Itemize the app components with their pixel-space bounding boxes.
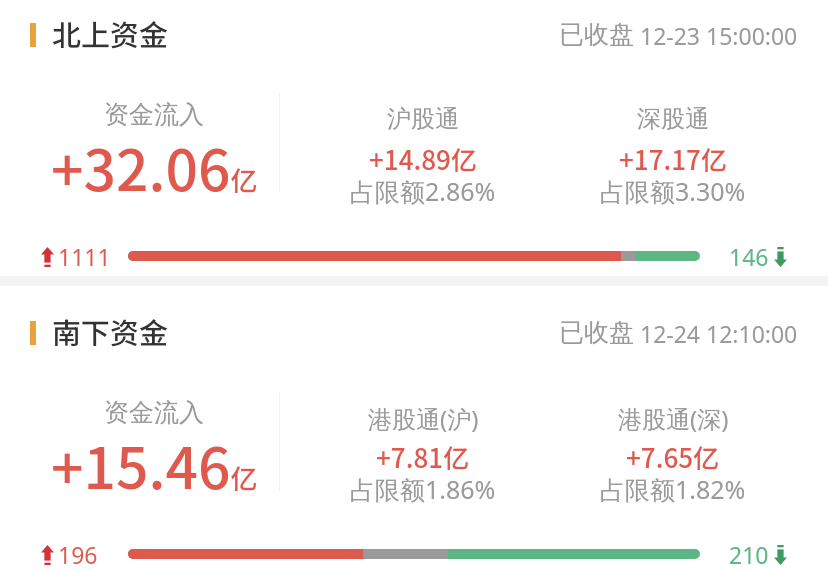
staticText: 占限额1.82% [600,472,746,506]
staticText: 深股通 [637,104,709,134]
button[interactable]: Rising stock count [41,241,111,272]
staticText: 港股通(沪) [368,402,479,435]
staticText: 占限额2.86% [350,174,496,208]
button[interactable]: 资金流入 [14,384,294,504]
staticText: 12-24 12:10:00 [640,318,798,349]
staticText: 港股通(深) [618,402,729,435]
button[interactable]: Rising stock count [41,539,98,570]
staticText: 占限额3.30% [600,174,746,208]
staticText: 146 [729,241,769,272]
button[interactable]: 沪股通 [298,86,548,206]
staticText: 210 [729,539,769,570]
staticText: +7.81亿 [376,438,470,476]
staticText: +15.46亿 [51,423,258,506]
other: Rising stock count [41,247,54,267]
button[interactable]: 南下资金 [0,298,828,368]
staticText: 资金流入 [104,99,204,130]
button[interactable]: 210 [729,539,787,570]
staticText: 1111 [58,241,111,272]
staticText: 南下资金 [52,310,169,352]
button[interactable]: 资金流入 [14,86,294,206]
button[interactable]: 深股通 [548,86,798,206]
staticText: 已收盘 [559,19,634,50]
other: Falling stock count [774,545,787,565]
button[interactable]: 港股通(深) [548,384,798,504]
staticText: +14.89亿 [369,140,477,178]
button[interactable]: 港股通(沪) [298,384,548,504]
staticText: 已收盘 [559,317,634,348]
other: Rising stock count [41,545,54,565]
staticText: 占限额1.86% [350,472,496,506]
staticText: +7.65亿 [626,438,720,476]
staticText: 196 [58,539,98,570]
staticText: 北上资金 [52,12,169,54]
staticText: 资金流入 [104,397,204,428]
button[interactable]: 北上资金 [0,0,828,70]
staticText: +32.06亿 [51,125,258,208]
other: Falling stock count [774,247,787,267]
button[interactable]: 146 [729,241,787,272]
staticText: +17.17亿 [619,140,727,178]
staticText: 12-23 15:00:00 [640,20,798,51]
staticText: 沪股通 [387,104,459,134]
